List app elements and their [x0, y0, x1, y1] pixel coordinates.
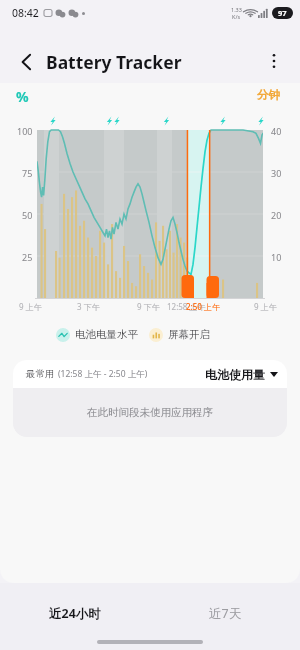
- staticText: 近24小时: [49, 605, 101, 622]
- staticText: Battery Tracker: [46, 50, 182, 74]
- staticText: (12:58 上午 - 2:50 上午): [58, 368, 148, 380]
- button[interactable]: More options: [262, 49, 286, 73]
- staticText: 100: [17, 125, 33, 137]
- button[interactable]: 最常用: [26, 360, 278, 388]
- staticText: 20: [271, 209, 282, 221]
- staticText: 9 上午: [19, 301, 42, 312]
- staticText: 08:42: [12, 6, 39, 20]
- button[interactable]: 近24小时: [0, 591, 150, 635]
- staticText: 75: [22, 167, 33, 179]
- staticText: 30: [271, 167, 282, 179]
- staticText: 12:58 上午: [167, 301, 206, 312]
- staticText: 50: [22, 209, 33, 221]
- staticText: K/s: [232, 13, 241, 20]
- button[interactable]: Back: [14, 49, 40, 75]
- staticText: 分钟: [257, 88, 280, 102]
- staticText: 2:50 上午: [186, 301, 220, 312]
- staticText: 1.33: [231, 6, 242, 13]
- staticText: 40: [271, 125, 282, 137]
- staticText: 10: [271, 251, 282, 263]
- staticText: 在此时间段未使用应用程序: [87, 406, 213, 419]
- staticText: 屏幕开启: [168, 328, 210, 341]
- staticText: 3 下午: [77, 301, 100, 312]
- staticText: 9 上午: [254, 301, 277, 312]
- staticText: 电池使用量: [205, 367, 265, 382]
- staticText: 97: [278, 8, 287, 18]
- staticText: 电池电量水平: [75, 328, 138, 341]
- staticText: 25: [22, 251, 33, 263]
- staticText: 9 下午: [137, 301, 160, 312]
- staticText: 最常用: [26, 368, 55, 380]
- staticText: %: [16, 87, 29, 106]
- staticText: 近7天: [209, 605, 242, 622]
- button[interactable]: 近7天: [150, 591, 300, 635]
